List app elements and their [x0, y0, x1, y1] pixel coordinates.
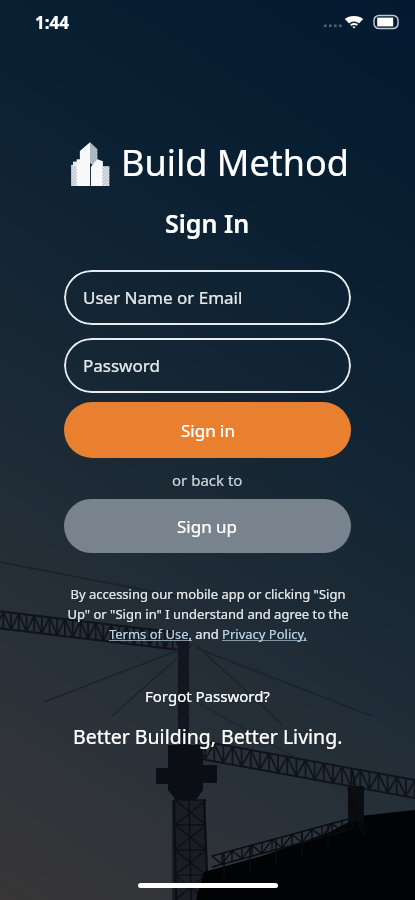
staticText: Better Building, Better Living.	[73, 723, 343, 750]
staticText: or back to	[172, 470, 243, 490]
staticText: Sign up	[177, 515, 238, 538]
staticText: Build Method	[121, 138, 349, 187]
staticText: Sign In	[165, 206, 250, 240]
button[interactable]: Password	[64, 338, 351, 393]
other: Status icons	[324, 10, 396, 34]
button[interactable]: User Name or Email	[64, 270, 351, 325]
staticText: 1:44	[35, 11, 69, 34]
staticText: By accessing our mobile app or clicking …	[58, 585, 358, 643]
staticText: Sign in	[181, 419, 235, 442]
button[interactable]: Sign in	[64, 402, 351, 458]
button[interactable]: Sign up	[64, 499, 351, 553]
staticText: User Name or Email	[83, 286, 243, 309]
staticText: Forgot Password?	[145, 686, 270, 706]
staticText: Password	[83, 354, 160, 377]
button[interactable]: Forgot Password?	[145, 686, 270, 706]
